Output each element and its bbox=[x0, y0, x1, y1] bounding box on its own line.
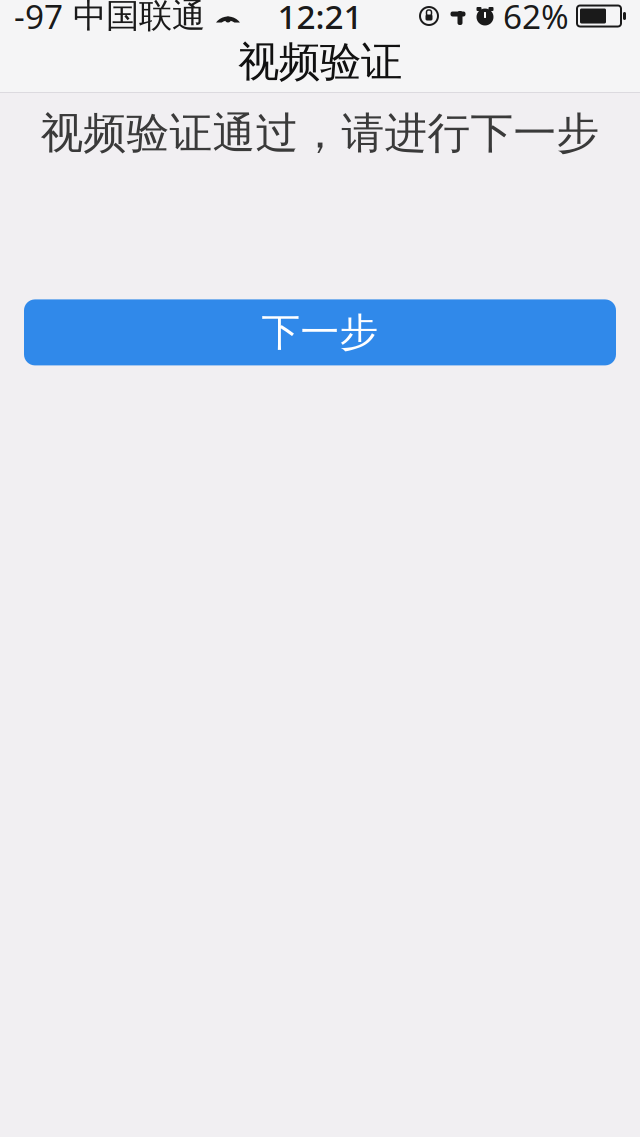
staticText: 12:21 bbox=[277, 0, 362, 38]
staticText: 视频验证 bbox=[238, 37, 402, 87]
staticText: 中国联通 bbox=[63, 0, 215, 36]
staticText: 视频验证通过，请进行下一步 bbox=[40, 107, 599, 159]
button[interactable]: 下一步 bbox=[24, 299, 616, 365]
staticText: 62% bbox=[503, 0, 569, 38]
staticText: 下一步 bbox=[261, 309, 378, 356]
staticText: -97 bbox=[14, 0, 63, 38]
